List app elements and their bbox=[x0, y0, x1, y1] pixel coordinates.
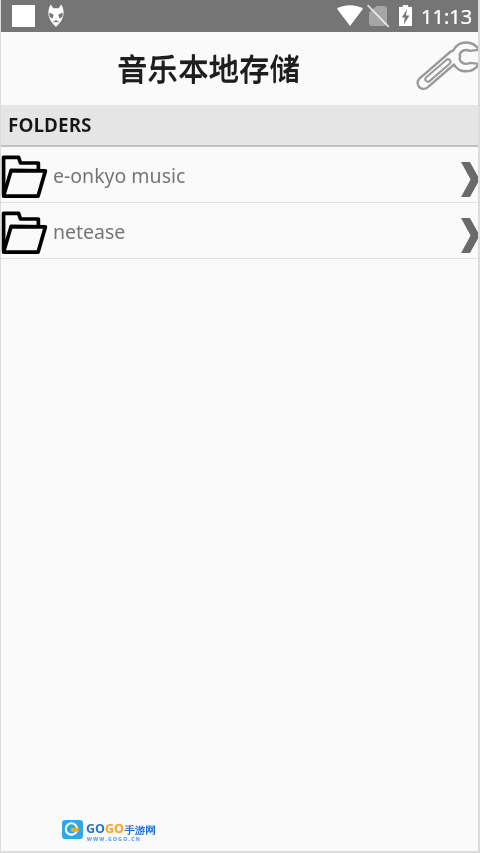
staticText: FOLDERS bbox=[8, 112, 92, 138]
staticText: GO bbox=[86, 820, 105, 837]
staticText: GO bbox=[105, 820, 124, 837]
staticText: W W W . G O G O . C N bbox=[87, 836, 140, 843]
button[interactable]: netease bbox=[0, 203, 480, 259]
staticText: netease bbox=[53, 218, 126, 245]
staticText: e-onkyo music bbox=[53, 162, 186, 189]
staticText: 手游网 bbox=[124, 824, 156, 837]
staticText: 11:13 bbox=[421, 3, 473, 30]
button[interactable]: e-onkyo music bbox=[0, 147, 480, 203]
staticText: 音乐本地存储 bbox=[117, 45, 300, 89]
staticText: 音乐本地存储 bbox=[117, 46, 300, 90]
button[interactable]: Settings bbox=[410, 37, 480, 101]
